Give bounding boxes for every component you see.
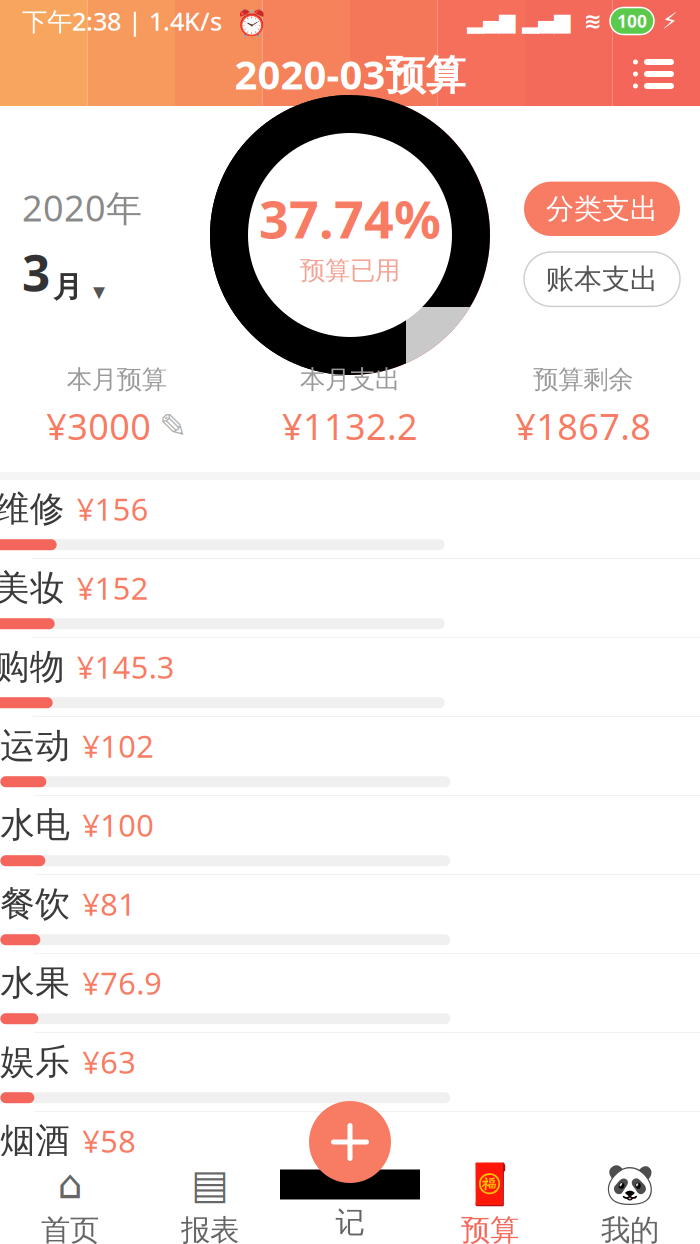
button[interactable]: ⌂: [0, 1152, 140, 1244]
staticText: 预算: [461, 1212, 519, 1244]
staticText: 2020-03预算: [234, 47, 465, 100]
button[interactable]: 💧: [0, 796, 700, 875]
staticText: ¥58: [82, 1121, 136, 1161]
button[interactable]: ▤: [140, 1152, 280, 1244]
staticText: 预算剩余: [533, 364, 633, 395]
staticText: ¥156: [77, 489, 149, 529]
staticText: ¥63: [82, 1042, 136, 1082]
staticText: 本月支出: [300, 364, 400, 395]
staticText: 水果: [0, 962, 70, 1004]
staticText: 账本支出: [546, 262, 658, 296]
staticText: 购物: [0, 646, 65, 688]
button[interactable]: 🍺: [0, 1112, 700, 1191]
staticText: 记: [335, 1204, 364, 1240]
staticText: 分类支出: [546, 192, 658, 226]
staticText: ¥102: [82, 726, 154, 766]
button[interactable]: 2020年: [0, 164, 142, 305]
staticText: ¥81: [82, 884, 136, 924]
staticText: ¥152: [77, 568, 149, 608]
staticText: ¥1132.2: [282, 402, 418, 450]
staticText: 水电: [0, 804, 70, 846]
staticText: 运动: [0, 725, 70, 767]
staticText: 3: [22, 239, 50, 305]
staticText: ✎: [159, 407, 187, 445]
staticText: 报表: [181, 1212, 239, 1244]
staticText: ▂▄▆ ▂▄▆ ≋: [467, 9, 602, 33]
button[interactable]: ⚽️: [0, 717, 700, 796]
staticText: 餐饮: [0, 883, 70, 925]
staticText: ⌂: [57, 1162, 82, 1207]
button[interactable]: 🧺: [0, 638, 700, 717]
staticText: ⚡︎: [654, 8, 678, 34]
staticText: ¥145.3: [77, 647, 175, 687]
staticText: 娱乐: [0, 1041, 70, 1083]
button[interactable]: 🍚: [0, 875, 700, 954]
staticText: 首页: [41, 1212, 99, 1244]
button[interactable]: 🍎: [0, 954, 700, 1033]
staticText: 🐼: [605, 1162, 655, 1207]
button[interactable]: 🧰: [0, 480, 700, 559]
button[interactable]: 🎮: [0, 1033, 700, 1112]
staticText: ▤: [191, 1162, 229, 1207]
staticText: ¥76.9: [82, 963, 162, 1003]
staticText: 🧧: [465, 1162, 515, 1207]
button[interactable]: 🐼: [560, 1152, 700, 1244]
staticText: ¥100: [82, 805, 154, 845]
staticText: 预算已用: [300, 255, 400, 286]
button[interactable]: 菜单: [619, 45, 688, 103]
staticText: 下午2:38 | 1.4K/s ⏰: [22, 4, 268, 38]
button[interactable]: 记一笔: [309, 1101, 391, 1183]
staticText: 烟酒: [0, 1120, 70, 1162]
staticText: ¥1867.8: [515, 402, 651, 450]
staticText: 我的: [601, 1212, 659, 1244]
staticText: 100: [617, 9, 647, 32]
button[interactable]: 记: [280, 1159, 420, 1240]
staticText: ▾: [85, 278, 105, 305]
button[interactable]: 💄: [0, 559, 700, 638]
staticText: 月: [53, 269, 82, 305]
staticText: 37.74%: [259, 184, 441, 253]
staticText: 本月预算: [67, 364, 167, 395]
button[interactable]: 🧧: [420, 1152, 560, 1244]
staticText: ¥3000: [46, 402, 151, 450]
staticText: 美妆: [0, 567, 65, 609]
staticText: 维修: [0, 488, 65, 530]
button[interactable]: 分类支出: [524, 182, 680, 236]
button[interactable]: 账本支出: [524, 252, 680, 306]
staticText: 2020年: [22, 184, 142, 231]
